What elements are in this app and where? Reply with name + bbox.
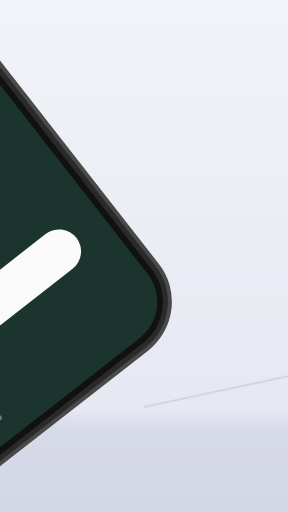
button[interactable]: Phone showing sign-in screen <box>0 0 288 512</box>
